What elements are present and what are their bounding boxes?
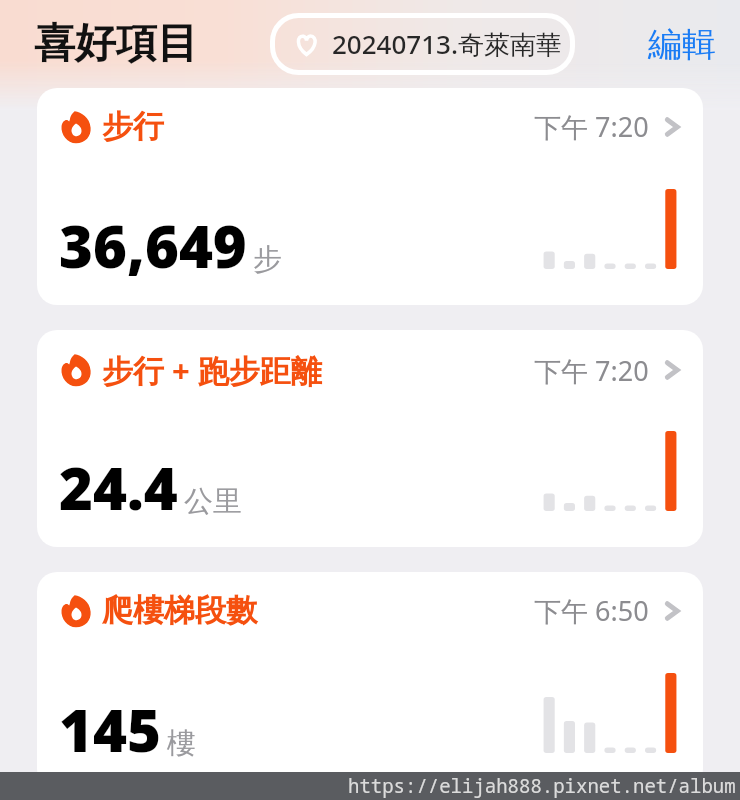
staticText: https://elijah888.pixnet.net/album xyxy=(348,773,736,799)
staticText: 下午 7:20 xyxy=(534,108,649,145)
staticText: 步 xyxy=(253,241,282,278)
staticText: 145 xyxy=(59,690,161,769)
staticText: 編輯 xyxy=(648,23,716,66)
staticText: 步行 xyxy=(102,107,164,146)
staticText: 喜好項目 xyxy=(34,18,198,70)
button[interactable]: 爬樓梯段數 xyxy=(37,572,703,789)
button[interactable]: 編輯 xyxy=(644,17,720,72)
staticText: 下午 6:50 xyxy=(534,592,649,629)
staticText: 公里 xyxy=(184,483,242,520)
button[interactable]: 20240713.奇萊南華 xyxy=(270,13,575,75)
staticText: 樓 xyxy=(167,725,196,762)
staticText: 步行 + 跑步距離 xyxy=(102,349,322,391)
staticText: 36,649 xyxy=(59,206,247,285)
staticText: 20240713.奇萊南華 xyxy=(332,26,563,62)
staticText: 爬樓梯段數 xyxy=(102,591,257,630)
staticText: 24.4 xyxy=(59,448,178,527)
button[interactable]: 步行 + 跑步距離 xyxy=(37,330,703,547)
button[interactable]: 步行 xyxy=(37,88,703,305)
staticText: 下午 7:20 xyxy=(534,352,649,389)
